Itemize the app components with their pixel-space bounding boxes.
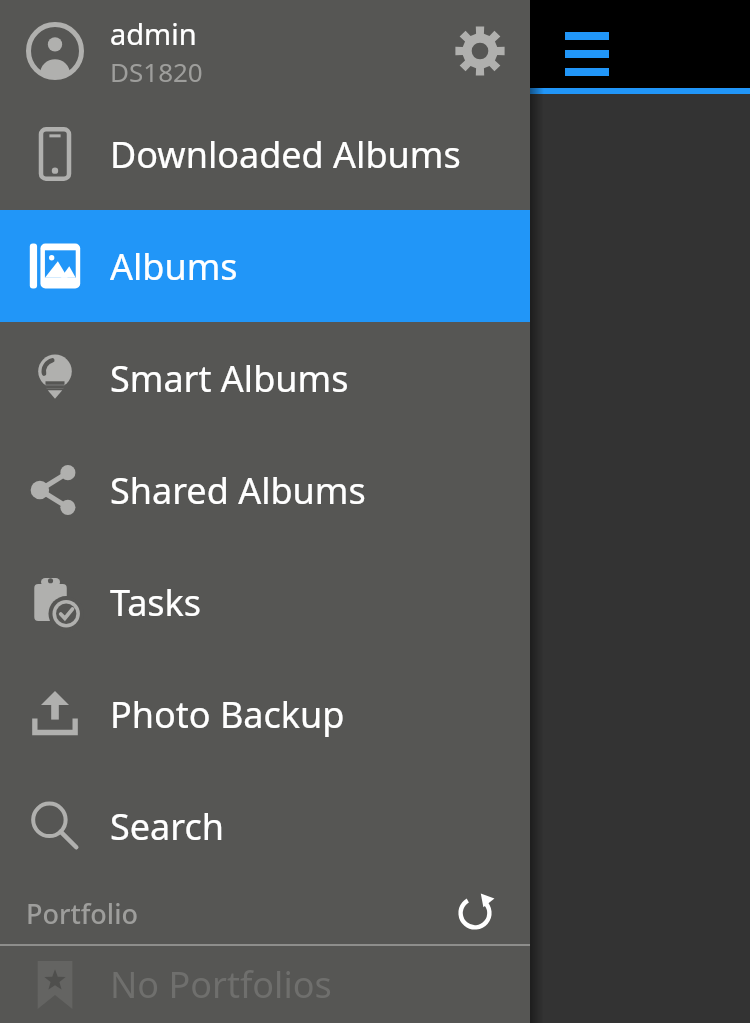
staticText: Photo Backup [110, 690, 345, 739]
staticText: DS1820 [110, 54, 203, 89]
button[interactable]: Search [0, 770, 530, 882]
staticText: Tasks [110, 578, 202, 627]
button[interactable]: Shared Albums [0, 434, 530, 546]
staticText: Downloaded Albums [110, 130, 461, 179]
button[interactable]: Refresh [444, 882, 506, 944]
button[interactable]: admin [0, 4, 530, 98]
staticText: admin [110, 14, 197, 53]
button[interactable]: Tasks [0, 546, 530, 658]
button[interactable]: Albums [0, 210, 530, 322]
staticText: Albums [110, 242, 238, 291]
staticText: Search [110, 802, 224, 851]
staticText: Portfolio [26, 895, 138, 932]
button[interactable]: No Portfolios [0, 946, 530, 1023]
button[interactable]: Smart Albums [0, 322, 530, 434]
staticText: Shared Albums [110, 466, 366, 515]
staticText: No Portfolios [110, 960, 332, 1009]
button[interactable]: Downloaded Albums [0, 98, 530, 210]
button[interactable]: Settings [430, 4, 530, 98]
button[interactable]: Photo Backup [0, 658, 530, 770]
button[interactable]: Open navigation menu [548, 12, 624, 88]
staticText: Smart Albums [110, 354, 349, 403]
